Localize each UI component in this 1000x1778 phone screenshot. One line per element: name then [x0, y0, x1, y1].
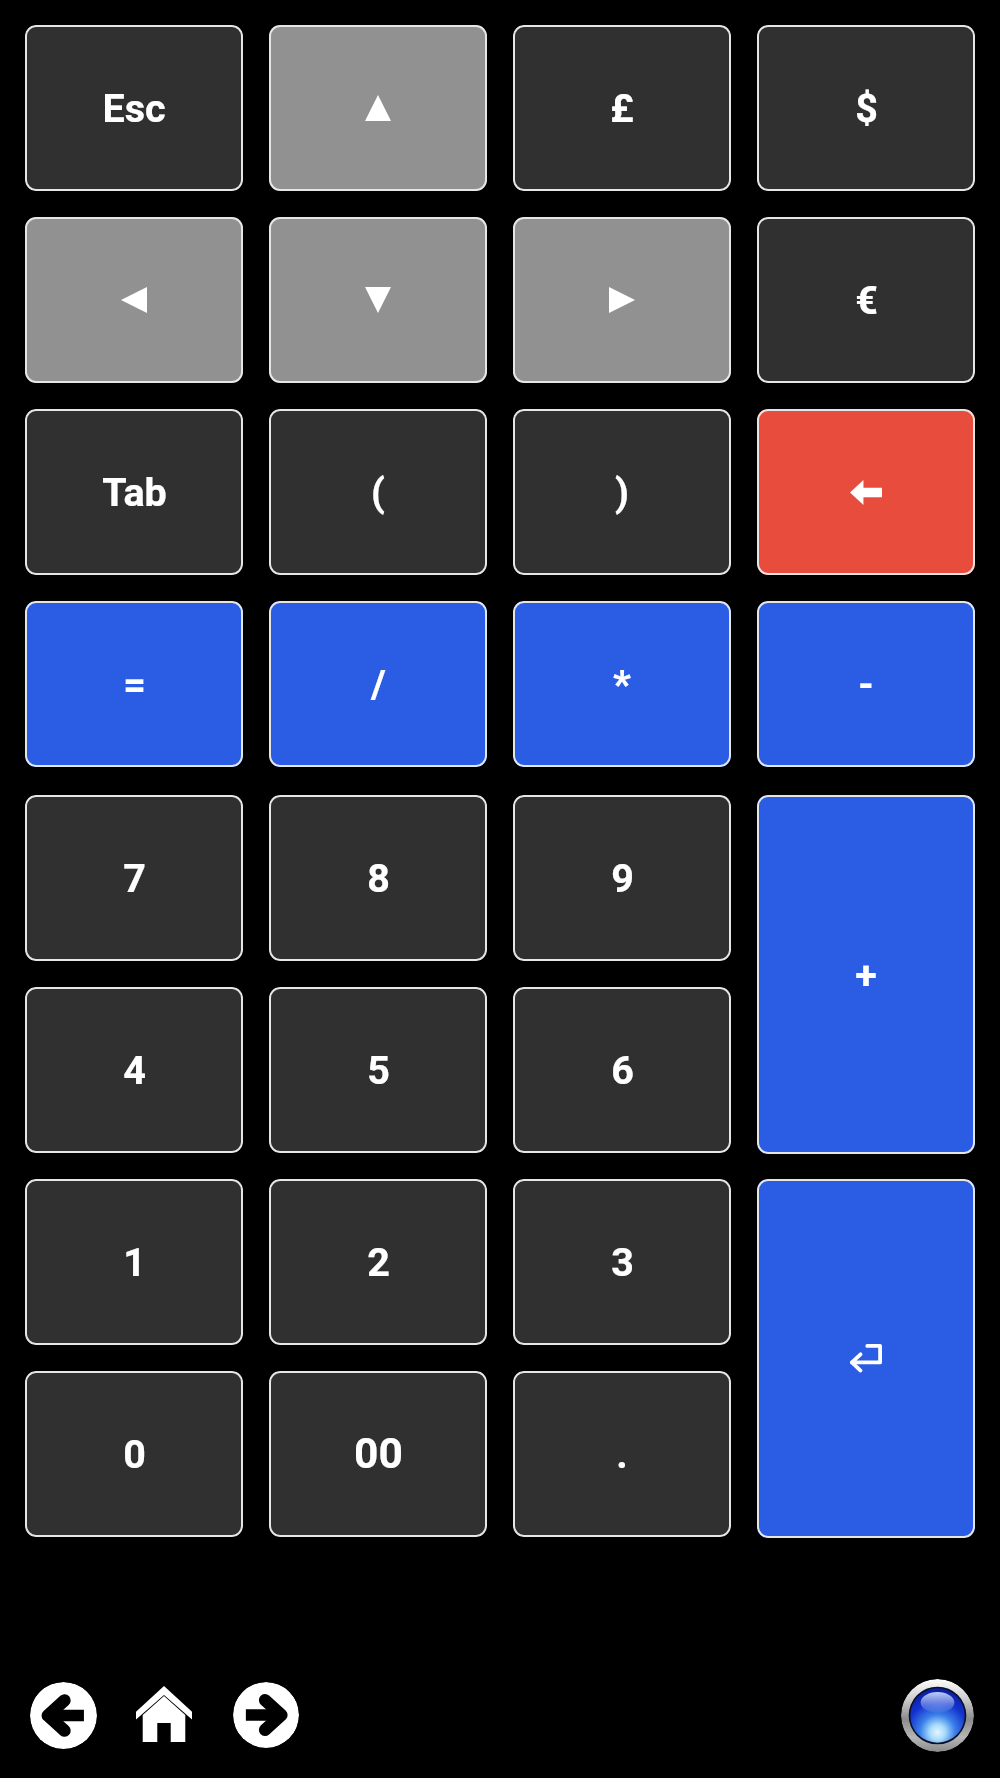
button[interactable]: £	[513, 25, 731, 191]
button[interactable]: Arrow right	[513, 217, 731, 383]
staticText: €	[855, 277, 878, 323]
button[interactable]: Home	[136, 1686, 192, 1742]
staticText: £	[610, 85, 634, 131]
button[interactable]: Enter	[757, 1179, 975, 1538]
staticText: 8	[367, 855, 390, 901]
staticText: 9	[611, 855, 634, 901]
button[interactable]: 8	[269, 795, 487, 961]
staticText: 0	[123, 1431, 146, 1477]
staticText: /	[371, 661, 386, 707]
button[interactable]: 1	[25, 1179, 243, 1345]
button[interactable]: Backspace	[757, 409, 975, 575]
button[interactable]: 4	[25, 987, 243, 1153]
button[interactable]: 7	[25, 795, 243, 961]
button[interactable]: Tab	[25, 409, 243, 575]
staticText: 4	[123, 1047, 146, 1093]
button[interactable]: Esc	[25, 25, 243, 191]
staticText: 00	[354, 1429, 403, 1479]
staticText: 5	[367, 1047, 390, 1093]
button[interactable]: -	[757, 601, 975, 767]
staticText: 6	[611, 1047, 634, 1093]
button[interactable]: Options	[901, 1679, 974, 1752]
staticText: -	[858, 661, 874, 707]
button[interactable]: €	[757, 217, 975, 383]
button[interactable]: 0	[25, 1371, 243, 1537]
staticText: Tab	[102, 469, 167, 515]
button[interactable]: Arrow down	[269, 217, 487, 383]
button[interactable]: 00	[269, 1371, 487, 1537]
button[interactable]: =	[25, 601, 243, 767]
button[interactable]: 6	[513, 987, 731, 1153]
staticText: Esc	[102, 85, 166, 131]
button[interactable]: /	[269, 601, 487, 767]
button[interactable]: 5	[269, 987, 487, 1153]
button[interactable]: (	[269, 409, 487, 575]
staticText: *	[613, 661, 631, 707]
staticText: .	[616, 1431, 628, 1477]
staticText: =	[123, 661, 146, 707]
button[interactable]: +	[757, 795, 975, 1154]
button[interactable]: )	[513, 409, 731, 575]
button[interactable]: 9	[513, 795, 731, 961]
staticText: $	[855, 85, 878, 131]
staticText: 2	[367, 1239, 390, 1285]
staticText: (	[371, 469, 385, 515]
staticText: +	[855, 952, 877, 998]
staticText: 7	[123, 855, 146, 901]
button[interactable]: $	[757, 25, 975, 191]
staticText: )	[615, 469, 629, 515]
button[interactable]: 3	[513, 1179, 731, 1345]
staticText: 1	[123, 1239, 146, 1285]
button[interactable]: Forward	[233, 1682, 299, 1748]
button[interactable]: Arrow up	[269, 25, 487, 191]
button[interactable]: Arrow left	[25, 217, 243, 383]
staticText: 3	[611, 1239, 634, 1285]
button[interactable]: *	[513, 601, 731, 767]
button[interactable]: Back	[30, 1682, 97, 1749]
button[interactable]: .	[513, 1371, 731, 1537]
button[interactable]: 2	[269, 1179, 487, 1345]
